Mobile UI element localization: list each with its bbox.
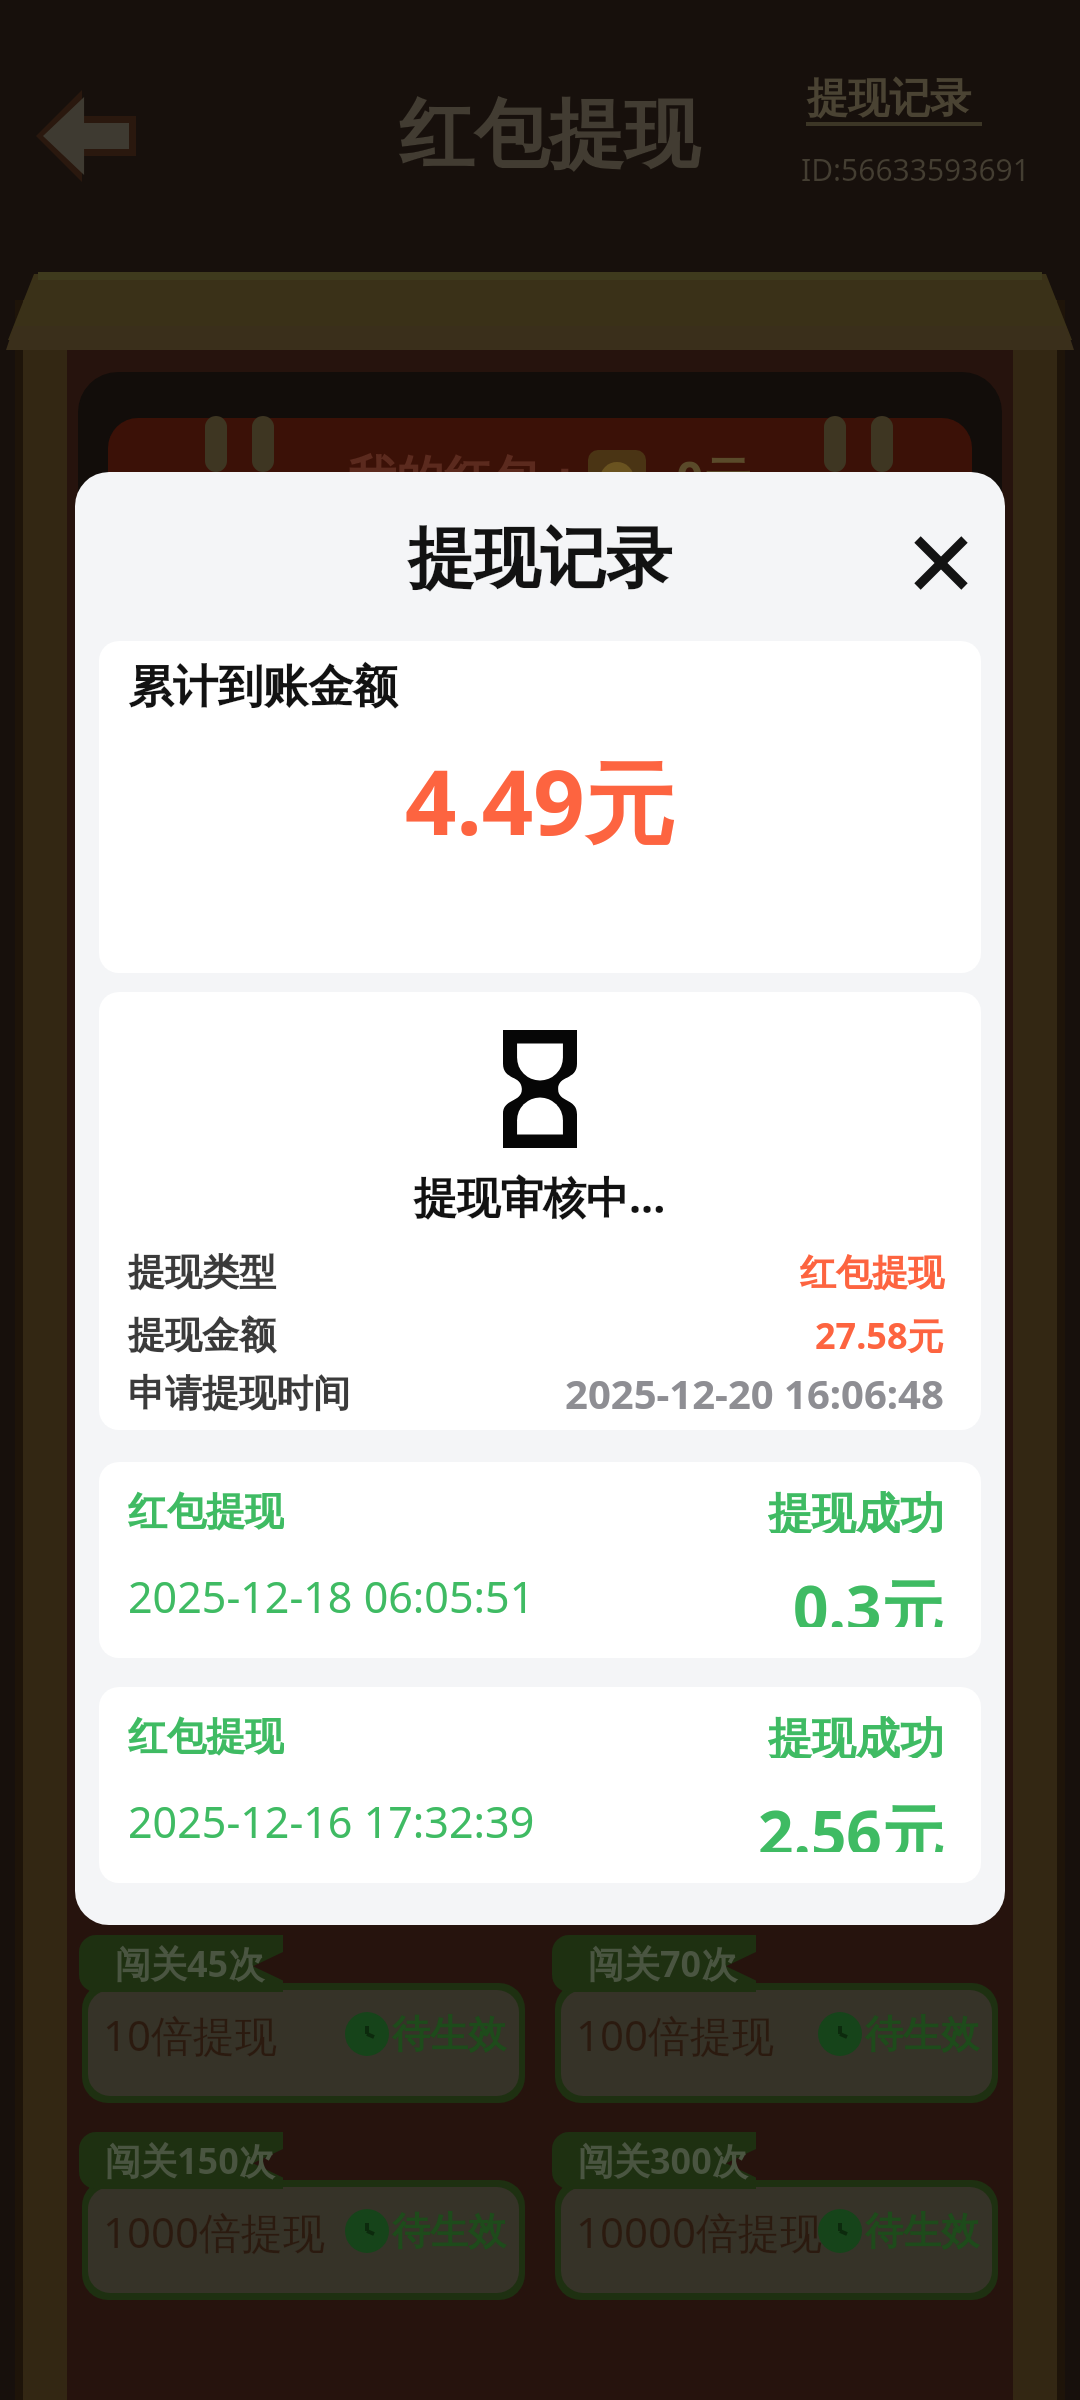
staticText: 10倍提现: [103, 2006, 278, 2063]
staticText: 红包提现: [800, 1250, 944, 1295]
staticText: 100倍提现: [576, 2006, 775, 2063]
staticText: 闯关45次: [115, 1939, 265, 1988]
staticText: 10000倍提现: [576, 2203, 823, 2260]
staticText: 待生效: [392, 2207, 506, 2255]
staticText: 0.3元: [793, 1565, 944, 1627]
staticText: 2025-12-18 06:05:51: [128, 1567, 535, 1626]
staticText: 闯关70次: [588, 1939, 738, 1988]
staticText: 27.58元: [815, 1311, 944, 1360]
staticText: 待生效: [865, 2010, 979, 2058]
button[interactable]: 红包提现: [99, 1687, 981, 1883]
button[interactable]: Back: [30, 90, 148, 182]
staticText: 1000倍提现: [103, 2203, 326, 2260]
staticText: 提现类型: [128, 1249, 276, 1296]
staticText: 提现金额: [128, 1312, 276, 1359]
staticText: 2.56元: [758, 1790, 944, 1852]
staticText: 我的红包：: [348, 449, 588, 509]
staticText: 提现记录: [408, 517, 672, 600]
staticText: 闯关300次: [578, 2136, 748, 2185]
staticText: 2025-12-20 16:06:48: [565, 1366, 944, 1420]
staticText: 0元: [676, 446, 752, 512]
button[interactable]: 闯关300次: [548, 2132, 998, 2302]
staticText: 提现审核中...: [414, 1167, 666, 1226]
button[interactable]: Close: [895, 517, 987, 609]
button[interactable]: 闯关150次: [75, 2132, 525, 2302]
staticText: 红包提现: [128, 1712, 284, 1758]
button[interactable]: 闯关70次: [548, 1935, 998, 2105]
staticText: 累计到账金额: [128, 659, 398, 716]
staticText: 2025-12-16 17:32:39: [128, 1792, 535, 1851]
staticText: 申请提现时间: [128, 1370, 350, 1417]
staticText: 闯关150次: [105, 2136, 275, 2185]
button[interactable]: 红包提现: [99, 1462, 981, 1658]
staticText: ID:56633593691: [801, 149, 1030, 190]
staticText: 4.49元: [405, 739, 675, 862]
staticText: 红包提现: [399, 88, 699, 182]
staticText: 待生效: [865, 2207, 979, 2255]
button[interactable]: 闯关45次: [75, 1935, 525, 2105]
staticText: 红包提现: [128, 1487, 284, 1533]
staticText: 待生效: [392, 2010, 506, 2058]
staticText: 提现成功: [768, 1712, 944, 1758]
staticText: 提现成功: [768, 1487, 944, 1533]
button[interactable]: 提现记录: [807, 73, 971, 125]
